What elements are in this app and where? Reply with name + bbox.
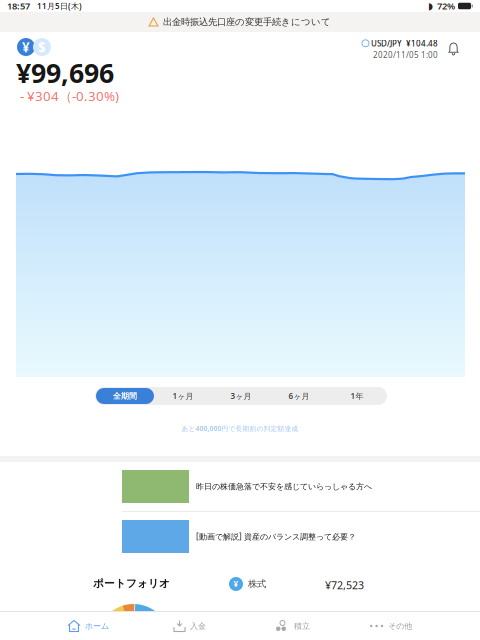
staticText: ホーム [85,621,109,631]
staticText: 6ヶ月 [288,391,309,401]
staticText: その他 [388,621,412,631]
staticText: 72% [437,0,455,12]
staticText: - ¥304（-0.30%) [20,87,119,105]
button[interactable]: 出金時振込先口座の変更手続きについて [0,12,480,32]
staticText: 11月5日(木) [37,1,82,11]
button[interactable]: 通知 [446,41,461,58]
staticText: 入金 [190,621,206,631]
staticText: 全期間 [113,391,137,401]
staticText: USD/JPY ¥104.48 [371,38,438,49]
button[interactable]: 円表示 [17,38,35,56]
button[interactable]: 入金 [174,612,234,640]
button[interactable]: 3ヶ月 [212,388,270,404]
button[interactable]: 6ヶ月 [270,388,328,404]
button[interactable]: 昨日の株価急落で不安を感じていらっしゃる方へ [0,462,480,511]
staticText: 昨日の株価急落で不安を感じていらっしゃる方へ [196,482,372,491]
staticText: 18:57 [7,0,30,12]
button[interactable]: ホーム [68,612,128,640]
button[interactable]: 1年 [328,388,386,404]
staticText: 2020/11/05 1:00 [373,50,438,60]
button[interactable]: 全期間 [96,388,154,404]
staticText: 3ヶ月 [230,391,251,401]
button[interactable]: 1ヶ月 [154,388,212,404]
staticText: [動画で解説] 資産のバランス調整って必要？ [196,531,356,542]
staticText: $ [38,38,46,56]
staticText: ¥ [22,38,30,56]
staticText: あと400,000円で長期割の判定額達成 [181,424,298,433]
button[interactable]: [動画で解説] 資産のバランス調整って必要？ [0,512,480,561]
staticText: ポートフォリオ [93,577,170,590]
staticText: 1年 [350,391,363,401]
staticText: ¥99,696 [16,55,114,90]
button[interactable]: 積立 [276,612,336,640]
staticText: 出金時振込先口座の変更手続きについて [163,16,331,28]
button[interactable]: ドル表示 [33,38,51,56]
staticText: 1ヶ月 [172,391,193,401]
staticText: 積立 [294,621,310,631]
staticText: ¥ [233,579,238,589]
button[interactable]: その他 [370,612,430,640]
staticText: ¥72,523 [325,578,364,592]
staticText: 株式 [248,578,266,590]
staticText: ◗ [428,1,433,11]
